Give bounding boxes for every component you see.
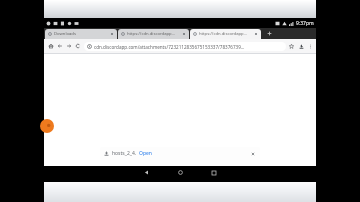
button[interactable]: Downloads	[296, 41, 306, 51]
button[interactable]: hosts_2_4.	[100, 147, 260, 160]
button[interactable]: More options	[306, 42, 314, 50]
staticText: Downloads	[54, 31, 109, 37]
button[interactable]: Back	[129, 166, 163, 179]
button[interactable]: Home	[46, 40, 55, 52]
button[interactable]: Close tab	[254, 32, 258, 36]
button[interactable]: Home	[163, 166, 197, 179]
button[interactable]: Downloads	[45, 29, 117, 39]
button[interactable]: Forward	[64, 40, 73, 52]
button[interactable]: Bookmark	[286, 41, 296, 51]
button[interactable]: Recent apps	[197, 166, 231, 179]
staticText: cdn.discordapp.com/attachments/723211283…	[94, 44, 283, 50]
staticText: https://cdn.discordapp…	[199, 31, 253, 37]
button[interactable]: New tab	[262, 28, 276, 39]
staticText: hosts_2_4.	[112, 150, 137, 157]
button[interactable]: https://cdn.discordapp…	[118, 29, 189, 39]
button[interactable]: Close tab	[110, 32, 114, 36]
button[interactable]: Back	[55, 40, 64, 52]
staticText: 9:37pm	[296, 20, 314, 27]
button[interactable]: Close tab	[182, 32, 186, 36]
button[interactable]: Open	[139, 150, 152, 157]
staticText: https://cdn.discordapp…	[127, 31, 181, 37]
button[interactable]: Reload	[73, 40, 82, 52]
button[interactable]: cdn.discordapp.com/attachments/723211283…	[84, 42, 286, 51]
button[interactable]: Dismiss download	[249, 150, 256, 157]
button[interactable]: https://cdn.discordapp…	[190, 29, 261, 39]
